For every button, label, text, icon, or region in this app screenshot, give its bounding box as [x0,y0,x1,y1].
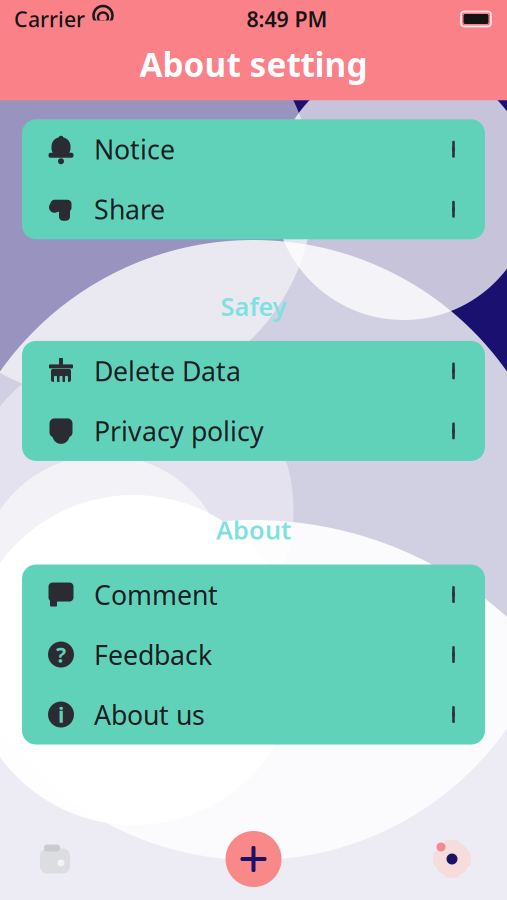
staticText: i [58,700,64,729]
button[interactable]: ? [22,624,485,684]
staticText: About setting [139,42,367,86]
staticText: Share [94,192,165,227]
staticText: 8:49 PM [246,5,327,33]
staticText: Feedback [94,637,212,672]
staticText: Carrier [14,5,85,33]
staticText: About us [94,697,205,732]
button[interactable]: Delete Data [22,341,485,401]
staticText: Safey [220,289,286,323]
button[interactable]: Comment [22,564,485,624]
button[interactable]: Gallery [0,828,110,890]
button[interactable]: i [22,684,485,744]
staticText: Comment [94,577,218,612]
button[interactable]: Add [198,828,308,890]
staticText: ? [56,640,66,669]
button[interactable]: Share [22,179,485,239]
staticText: Notice [94,132,175,167]
button[interactable]: Settings [397,828,507,890]
button[interactable]: Privacy policy [22,401,485,461]
staticText: About [216,513,291,546]
staticText: Privacy policy [94,413,264,449]
staticText: Delete Data [94,353,241,389]
button[interactable]: Notice [22,119,485,179]
